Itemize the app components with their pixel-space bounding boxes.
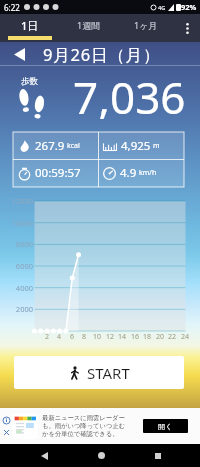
button[interactable]: 1週間: [60, 14, 117, 42]
staticText: kcal: [67, 141, 80, 151]
staticText: 1週間: [77, 19, 101, 31]
staticText: 7,036: [73, 67, 186, 119]
button[interactable]: 4.9: [98, 159, 184, 187]
staticText: START: [87, 363, 130, 383]
staticText: も。雨がいつ降っていつ止む: [42, 422, 126, 430]
button[interactable]: Back: [30, 444, 58, 467]
staticText: 1日: [21, 18, 39, 33]
staticText: 6:22: [4, 2, 20, 13]
button[interactable]: 開く: [143, 419, 188, 433]
button[interactable]: 4,925: [98, 132, 184, 159]
staticText: 最新ニュースに雨雲レーダー: [42, 414, 125, 422]
staticText: 4G: [158, 4, 166, 11]
staticText: かを分単位で確認できる。: [42, 430, 119, 438]
staticText: 92%: [181, 2, 197, 12]
button[interactable]: Recent apps: [144, 444, 172, 467]
staticText: 6000: [0, 261, 33, 271]
staticText: m: [153, 141, 160, 151]
staticText: 歩数: [21, 76, 38, 87]
staticText: 2000: [0, 304, 33, 314]
staticText: km/h: [139, 168, 157, 178]
staticText: 267.9: [35, 138, 65, 154]
staticText: 14: [118, 332, 127, 342]
staticText: 8000: [0, 239, 33, 249]
button[interactable]: More options: [174, 14, 200, 42]
button[interactable]: 267.9: [13, 132, 98, 159]
button[interactable]: 1日: [0, 14, 60, 42]
button[interactable]: 00:59:57: [13, 159, 98, 187]
staticText: 開く: [158, 422, 173, 431]
staticText: 18: [143, 332, 152, 342]
button[interactable]: [12, 413, 38, 439]
staticText: 6: [70, 332, 75, 342]
staticText: 4,925: [121, 138, 151, 154]
button[interactable]: 1ヶ月: [117, 14, 174, 42]
staticText: 4: [57, 332, 62, 342]
staticText: 12: [106, 332, 115, 342]
staticText: 24: [181, 332, 190, 342]
staticText: 22: [168, 332, 177, 342]
button[interactable]: Previous day: [7, 42, 31, 66]
staticText: 10: [93, 332, 102, 342]
button[interactable]: Home: [87, 444, 115, 467]
staticText: 4.9: [120, 165, 137, 181]
button[interactable]: START: [14, 356, 184, 389]
staticText: 4000: [0, 283, 33, 293]
staticText: 10000: [0, 218, 33, 228]
staticText: 2: [45, 332, 50, 342]
staticText: 16: [131, 332, 140, 342]
staticText: 00:59:57: [35, 165, 81, 181]
staticText: 9月26日（月）: [43, 43, 161, 66]
staticText: 8: [82, 332, 87, 342]
staticText: 12000: [0, 196, 33, 206]
staticText: 20: [156, 332, 165, 342]
staticText: 1ヶ月: [134, 19, 158, 31]
